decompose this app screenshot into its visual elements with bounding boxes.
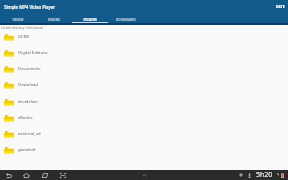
- button[interactable]: Screenshot: [59, 170, 66, 180]
- staticText: FOLDERS: [83, 18, 97, 22]
- staticText: DCIM: [18, 34, 29, 40]
- button[interactable]: Recent apps: [41, 170, 48, 180]
- staticText: eBooks: [18, 115, 33, 121]
- staticText: Download: [18, 82, 38, 88]
- button[interactable]: FOLDERS: [72, 13, 108, 22]
- button[interactable]: RATE: [271, 2, 288, 11]
- button[interactable]: Home: [23, 170, 30, 180]
- staticText: external_sd: [18, 131, 41, 137]
- button[interactable]: Digital Editions: [0, 45, 288, 61]
- button[interactable]: external_sd: [0, 126, 288, 142]
- staticText: Digital Editions: [18, 50, 48, 56]
- staticText: Simple MP4 Video Player: [4, 4, 56, 10]
- staticText: 5h20: [256, 170, 273, 180]
- button[interactable]: eBooks: [0, 110, 288, 126]
- button[interactable]: Documents: [0, 61, 288, 77]
- button[interactable]: ONLINE: [36, 13, 72, 22]
- button[interactable]: DCIM: [0, 29, 288, 45]
- staticText: gameloft: [18, 147, 36, 153]
- staticText: droidchen: [18, 99, 38, 105]
- button[interactable]: VIDEOS: [0, 13, 36, 22]
- staticText: ONLINE: [48, 18, 60, 22]
- staticText: VIDEOS: [12, 18, 24, 22]
- button[interactable]: BOOKMARKS: [108, 13, 144, 22]
- staticText: BOOKMARKS: [116, 18, 136, 22]
- button[interactable]: Download: [0, 77, 288, 93]
- staticText: RATE: [276, 4, 285, 9]
- button[interactable]: gameloft: [0, 142, 288, 158]
- staticText: Current directory: /mnt/sdcard: [1, 26, 43, 30]
- staticText: Documents: [18, 66, 41, 72]
- button[interactable]: Back: [5, 170, 12, 180]
- button[interactable]: droidchen: [0, 94, 288, 110]
